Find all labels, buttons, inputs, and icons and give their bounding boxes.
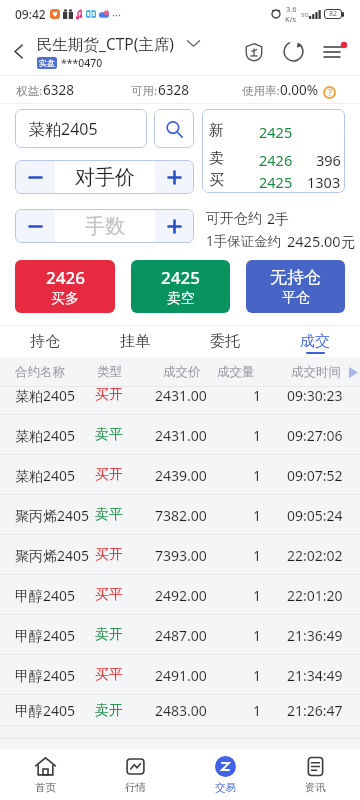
staticText: 买开 [95,466,123,484]
staticText: 1手保证金约 [206,232,282,250]
staticText: 396 [316,150,341,170]
staticText: 1 [253,701,262,720]
staticText: 1 [253,546,262,565]
staticText: 2439.00 [155,466,207,485]
staticText: 买多 [51,290,79,308]
staticText: 2491.00 [155,666,207,685]
staticText: 无持仓 [270,267,321,288]
staticText: 1 [253,506,262,525]
staticText: 平仓 [282,289,310,307]
staticText: 1 [253,387,262,405]
staticText: 22:01:20 [287,586,343,605]
button[interactable]: 聚丙烯2405 [0,495,360,535]
button[interactable]: 甲醇2405 [0,615,360,655]
staticText: 82 [329,9,338,19]
staticText: 1 [253,466,262,485]
staticText: 聚丙烯2405 [15,506,90,525]
button[interactable]: Decrease [15,209,55,243]
staticText: 菜粕2405 [15,426,76,445]
staticText: 1303 [307,172,341,192]
staticText: 卖平 [95,506,123,524]
staticText: 实盘 [39,58,55,68]
button[interactable]: 菜粕2405 [0,415,360,455]
staticText: 卖空 [167,290,195,308]
staticText: 09:07:52 [287,466,343,485]
staticText: 聚丙烯2405 [15,546,90,565]
staticText: 甲醇2405 [15,586,76,605]
button[interactable]: 持仓 [0,326,90,357]
staticText: 2487.00 [155,626,207,645]
staticText: 可用: [131,83,158,99]
staticText: 2492.00 [155,586,207,605]
staticText: 使用率: [242,83,280,99]
staticText: 2426 [259,150,293,170]
staticText: 22:02:02 [287,546,343,565]
button[interactable]: 菜粕2405 [0,387,360,415]
staticText: 成交价 [163,364,201,380]
button[interactable]: Menu [312,28,355,75]
button[interactable]: 甲醇2405 [0,655,360,695]
staticText: 卖 [209,149,224,168]
button[interactable]: Increase [155,160,194,194]
staticText: 菜粕2405 [15,387,76,405]
staticText: 可开仓约 [206,210,262,228]
staticText: 新 [209,121,224,140]
staticText: 合约名称 [15,364,65,380]
button[interactable]: 行情 [90,749,180,800]
button[interactable]: Increase [155,209,194,243]
staticText: 2425 [161,266,200,289]
staticText: 21:26:47 [287,701,343,720]
button[interactable]: 成交 [270,326,360,357]
button[interactable]: 菜粕2405 [0,455,360,495]
button[interactable]: 委托 [180,326,270,357]
button[interactable]: 2425 [131,260,230,313]
button[interactable]: 无持仓 [246,260,345,313]
staticText: 2425.00元 [287,231,356,251]
button[interactable]: 2426 [15,260,115,313]
staticText: 手数 [85,214,125,239]
staticText: 菜粕2405 [15,466,76,485]
button[interactable]: 首页 [0,749,90,800]
staticText: 7393.00 [155,546,207,565]
staticText: 09:05:24 [287,506,343,525]
staticText: 买平 [95,586,123,604]
staticText: 成交量 [217,364,255,380]
button[interactable]: 菜粕2405 [15,109,147,148]
button[interactable]: 聚丙烯2405 [0,535,360,575]
staticText: 卖开 [95,702,123,720]
staticText: 首页 [35,781,56,794]
staticText: 成交时间 [291,364,341,380]
button[interactable]: Refresh [275,28,312,75]
button[interactable]: 甲醇2405 [0,575,360,615]
staticText: 2425 [259,122,293,142]
staticText: 09:27:06 [287,426,343,445]
staticText: 7382.00 [155,506,207,525]
button[interactable]: Back [0,28,37,75]
staticText: 行情 [125,781,146,794]
staticText: 买开 [95,387,123,404]
staticText: 09:42 [15,6,46,22]
staticText: 3.6 [286,4,297,14]
staticText: 2431.00 [155,387,207,405]
button[interactable]: 甲醇2405 [0,695,360,726]
staticText: 民生期货_CTP(主席) [37,33,174,54]
button[interactable]: 手数 [55,209,155,243]
staticText: 甲醇2405 [15,626,76,645]
staticText: 6328 [43,81,74,99]
staticText: 甲醇2405 [15,666,76,685]
staticText: K/s [285,14,297,24]
button[interactable]: Search [154,109,194,148]
button[interactable]: 交易 [180,749,270,800]
staticText: 1 [253,626,262,645]
staticText: 买 [209,171,224,190]
staticText: 买开 [95,546,123,564]
staticText: 交易 [215,781,236,794]
button[interactable]: Security [232,28,275,75]
button[interactable]: 挂单 [90,326,180,357]
button[interactable]: 资讯 [270,749,360,800]
button[interactable]: 对手价 [55,160,155,194]
button[interactable]: Decrease [15,160,55,194]
staticText: 挂单 [120,332,150,351]
staticText: 委托 [210,332,240,351]
staticText: 持仓 [30,332,60,351]
